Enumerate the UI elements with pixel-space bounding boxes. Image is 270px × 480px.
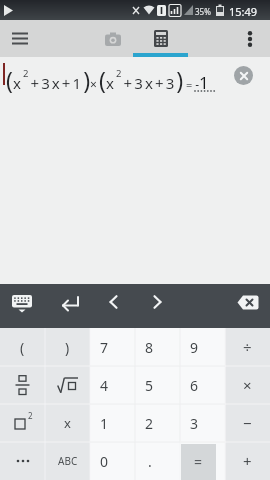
button[interactable] (0, 284, 44, 328)
button[interactable] (0, 20, 40, 57)
staticText: 3 (190, 414, 199, 433)
button[interactable]: ABC (45, 442, 90, 480)
button[interactable]: − (225, 404, 270, 442)
button[interactable]: ) (45, 328, 90, 366)
button[interactable]: 9 (180, 328, 225, 366)
staticText: 7 (100, 338, 109, 357)
button[interactable] (136, 284, 178, 328)
button[interactable]: 0 (90, 442, 135, 480)
staticText: ÷ (243, 337, 252, 357)
button[interactable] (234, 66, 253, 85)
staticText: 2 (145, 414, 154, 433)
button[interactable] (88, 20, 138, 57)
button[interactable]: ÷ (225, 328, 270, 366)
staticText: 15:49 (229, 4, 258, 19)
staticText: 35% (195, 6, 211, 17)
button[interactable] (45, 366, 90, 404)
staticText: 9 (190, 338, 199, 357)
button[interactable]: . (135, 442, 180, 480)
staticText: 5 (145, 376, 154, 395)
button[interactable]: = (180, 442, 225, 480)
staticText: ( (20, 338, 25, 357)
staticText: 1 (100, 414, 109, 433)
button[interactable] (48, 284, 92, 328)
button[interactable]: 2 (135, 404, 180, 442)
button[interactable] (0, 366, 45, 404)
staticText: + (243, 451, 252, 471)
button[interactable]: 1 (90, 404, 135, 442)
staticText: ABC (58, 454, 78, 468)
staticText: 8 (145, 338, 154, 357)
button[interactable]: 3 (180, 404, 225, 442)
staticText: × (243, 375, 252, 395)
button[interactable]: ( (0, 328, 45, 366)
button[interactable] (230, 20, 270, 57)
button[interactable] (92, 284, 134, 328)
button[interactable]: x (45, 404, 90, 442)
button[interactable]: 4 (90, 366, 135, 404)
button[interactable]: × (225, 366, 270, 404)
button[interactable]: 8 (135, 328, 180, 366)
staticText: 0 (100, 452, 109, 471)
staticText: 6 (190, 376, 199, 395)
staticText: 4 (100, 376, 109, 395)
staticText: . (148, 452, 152, 471)
button[interactable]: 7 (90, 328, 135, 366)
staticText: (x2+3x+1)×(x2+3x+3) = -1 (6, 64, 209, 95)
button[interactable] (0, 442, 45, 480)
staticText: − (243, 413, 252, 433)
button[interactable]: + (225, 442, 270, 480)
staticText: = (194, 452, 203, 471)
button[interactable] (133, 20, 188, 57)
staticText: 2 (28, 410, 33, 421)
staticText: ) (65, 338, 70, 357)
button[interactable]: 2 (0, 404, 45, 442)
button[interactable]: 6 (180, 366, 225, 404)
staticText: x (64, 414, 71, 432)
button[interactable] (226, 284, 270, 328)
button[interactable]: 5 (135, 366, 180, 404)
